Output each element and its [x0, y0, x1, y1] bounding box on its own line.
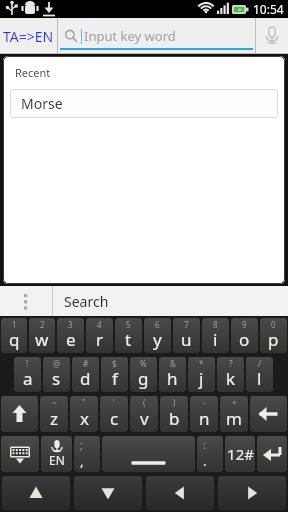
button[interactable]: Morse: [10, 89, 278, 118]
staticText: $: [112, 358, 117, 369]
button[interactable]: Voice input: [256, 18, 288, 54]
button[interactable]: Search: [53, 286, 288, 316]
staticText: TA=>EN: [3, 27, 54, 46]
button[interactable]: 2: [29, 318, 55, 353]
button[interactable]: !: [14, 357, 41, 392]
button[interactable]: *: [188, 357, 215, 392]
staticText: ,: [80, 452, 84, 470]
staticText: i: [213, 328, 218, 351]
staticText: +: [232, 397, 237, 408]
button[interactable]: 7: [173, 318, 200, 353]
button[interactable]: Backspace: [250, 396, 287, 432]
button[interactable]: 5: [115, 318, 142, 353]
staticText: 3: [68, 319, 73, 330]
button[interactable]: 0: [260, 318, 287, 353]
button[interactable]: -: [190, 396, 218, 432]
staticText: 6: [155, 319, 160, 330]
staticText: /: [258, 358, 261, 369]
button[interactable]: 6: [144, 318, 171, 353]
button[interactable]: &: [159, 357, 186, 392]
button[interactable]: Options: [0, 286, 52, 316]
staticText: a: [23, 367, 33, 390]
staticText: 7: [184, 319, 189, 330]
staticText: #: [83, 358, 89, 369]
button[interactable]: Voice input EN: [41, 436, 72, 472]
button[interactable]: $: [101, 357, 128, 392]
button[interactable]: 1: [1, 318, 27, 353]
staticText: EN: [49, 452, 65, 468]
button[interactable]: Enter: [257, 436, 287, 472]
staticText: 0: [271, 319, 276, 330]
staticText: .: [203, 452, 207, 470]
button[interactable]: :: [197, 436, 223, 472]
staticText: 9: [242, 319, 247, 330]
staticText: l: [257, 367, 262, 390]
button[interactable]: ~: [40, 396, 68, 432]
staticText: &: [170, 358, 176, 369]
staticText: t: [125, 328, 132, 351]
staticText: m: [226, 407, 242, 430]
button[interactable]: #: [72, 357, 99, 392]
staticText: ?: [229, 358, 233, 369]
staticText: 2: [40, 319, 45, 330]
staticText: Morse: [21, 94, 63, 113]
staticText: j: [199, 367, 204, 390]
button[interactable]: @: [43, 357, 70, 392]
button[interactable]: Right: [218, 476, 286, 510]
staticText: %: [140, 358, 147, 369]
staticText: c: [110, 407, 119, 430]
staticText: ;: [80, 437, 83, 452]
staticText: @: [53, 358, 61, 369]
staticText: Recent: [15, 65, 51, 80]
staticText: f: [112, 367, 118, 390]
button[interactable]: /: [246, 357, 273, 392]
button[interactable]: 4: [86, 318, 113, 353]
staticText: s: [52, 367, 61, 390]
staticText: x: [80, 407, 89, 430]
staticText: 12#: [227, 444, 254, 464]
staticText: 8: [213, 319, 218, 330]
button[interactable]: Down: [74, 476, 142, 510]
staticText: d: [80, 367, 91, 390]
button[interactable]: Input key word: [58, 18, 255, 54]
staticText: r: [96, 328, 104, 351]
button[interactable]: 8: [202, 318, 229, 353]
button[interactable]: ;: [74, 436, 100, 472]
staticText: q: [9, 328, 20, 351]
button[interactable]: TA=>EN: [0, 18, 57, 54]
button[interactable]: 9: [231, 318, 258, 353]
staticText: ': [113, 397, 115, 408]
button[interactable]: ": [70, 396, 98, 432]
staticText: 5: [126, 319, 131, 330]
button[interactable]: Up: [2, 476, 70, 510]
staticText: -: [203, 397, 206, 408]
button[interactable]: +: [220, 396, 248, 432]
staticText: !: [26, 358, 29, 369]
staticText: Search: [64, 292, 109, 311]
staticText: z: [50, 407, 58, 430]
staticText: *: [199, 358, 204, 369]
staticText: ": [82, 397, 86, 408]
button[interactable]: (: [130, 396, 158, 432]
staticText: b: [169, 407, 180, 430]
staticText: k: [226, 367, 236, 390]
staticText: u: [181, 328, 192, 351]
staticText: e: [66, 328, 76, 351]
staticText: o: [239, 328, 250, 351]
button[interactable]: Hide keyboard: [1, 436, 39, 472]
staticText: 10:54: [253, 1, 284, 17]
button[interactable]: ?: [217, 357, 244, 392]
button[interactable]: 12#: [225, 436, 255, 472]
button[interactable]: ': [100, 396, 128, 432]
button[interactable]: Shift: [1, 396, 38, 432]
staticText: ~: [52, 397, 57, 408]
staticText: y: [153, 328, 162, 351]
staticText: h: [167, 367, 178, 390]
staticText: (: [143, 397, 146, 408]
button[interactable]: 3: [57, 318, 84, 353]
button[interactable]: ): [160, 396, 188, 432]
button[interactable]: %: [130, 357, 157, 392]
button[interactable]: Left: [146, 476, 214, 510]
staticText: :: [203, 437, 206, 452]
button[interactable]: Space: [102, 436, 195, 472]
